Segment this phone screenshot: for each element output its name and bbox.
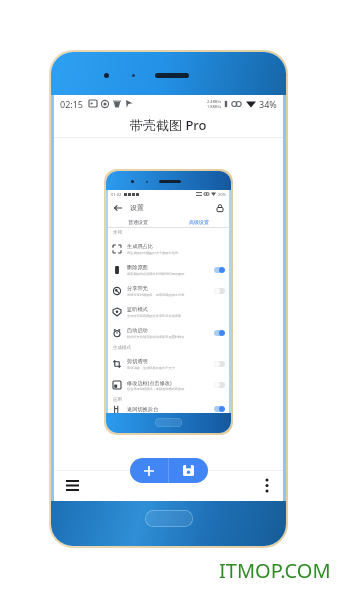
- staticText: 1.8KB/s: [207, 104, 222, 109]
- button[interactable]: Toggle: [214, 361, 225, 367]
- button[interactable]: 生成屏占比: [108, 238, 229, 259]
- staticText: 02:15: [60, 98, 84, 110]
- staticText: 监听截图后自动弹出对话框询问是否删除: [127, 272, 185, 276]
- staticText: 应用: [113, 397, 122, 403]
- staticText: 删除原图: [127, 264, 148, 271]
- button[interactable]: Toggle: [214, 382, 225, 388]
- staticText: 34%: [259, 98, 277, 110]
- button[interactable]: Menu: [60, 473, 84, 497]
- staticText: 系统分享时截图后，用带壳截图加工分享: [127, 293, 185, 297]
- staticText: 带壳截图 Pro: [130, 116, 207, 134]
- staticText: 20%: [218, 192, 226, 197]
- button[interactable]: 自动启动: [108, 322, 229, 343]
- staticText: 生成屏占比: [127, 243, 153, 250]
- button[interactable]: Toggle: [214, 267, 225, 273]
- staticText: 剪切透明: [127, 358, 148, 365]
- button[interactable]: 返回切换后台: [108, 405, 229, 413]
- staticText: 常规: [113, 230, 122, 236]
- staticText: 01:02: [111, 192, 122, 197]
- button[interactable]: Toggle: [214, 406, 225, 412]
- button[interactable]: 剪切透明: [108, 353, 229, 374]
- button[interactable]: Back: [113, 203, 122, 212]
- staticText: 剪切边缘，生成优质的最大小尺寸: [127, 366, 175, 370]
- button[interactable]: 监听模式: [108, 301, 229, 322]
- button[interactable]: 分享带壳: [108, 280, 229, 301]
- staticText: 监听模式: [127, 306, 148, 313]
- staticText: 设置: [130, 203, 144, 212]
- button[interactable]: 修改边框(点击修改): [108, 374, 229, 395]
- staticText: 普通设置: [128, 219, 148, 225]
- button[interactable]: Lock: [215, 203, 224, 212]
- staticText: ITMOP.COM: [219, 557, 331, 584]
- button[interactable]: 普通设置: [108, 216, 168, 227]
- staticText: 生成模式: [113, 345, 131, 351]
- staticText: 全局开启监听截图文件变化后自动弹窗: [127, 314, 182, 318]
- button[interactable]: Add: [130, 458, 168, 483]
- staticText: 软件打开自动启动自动监听等设置时触发: [127, 335, 185, 339]
- button[interactable]: More options: [255, 473, 279, 497]
- staticText: 修改边框(点击修改): [127, 379, 172, 386]
- staticText: 2.4KB/s: [207, 99, 222, 104]
- button[interactable]: 高级设置: [168, 216, 229, 227]
- button[interactable]: 删除原图: [108, 259, 229, 280]
- button[interactable]: Toggle: [214, 330, 225, 336]
- staticText: 返回切换后台: [127, 406, 159, 413]
- staticText: 仅在使用边框模式，未刻透明模式有效果: [127, 387, 185, 391]
- staticText: 自动启动: [127, 327, 148, 334]
- button[interactable]: Toggle: [214, 288, 225, 294]
- staticText: 将生成图的中横纵的大小虚图片比例: [127, 251, 178, 255]
- button[interactable]: Save: [169, 458, 208, 483]
- staticText: 分享带壳: [127, 285, 148, 292]
- staticText: 高级设置: [189, 219, 209, 225]
